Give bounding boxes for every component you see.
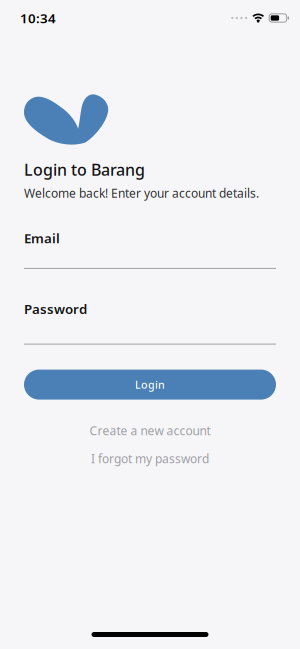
staticText: I forgot my password (91, 450, 209, 466)
button[interactable]: Create a new account (24, 423, 276, 438)
staticText: Create a new account (89, 423, 210, 438)
staticText: Login to Barang (24, 159, 145, 180)
button[interactable]: Login (24, 370, 276, 400)
button[interactable]: I forgot my password (24, 450, 276, 466)
staticText: Password (24, 300, 87, 318)
staticText: 10:34 (20, 9, 56, 27)
staticText: Email (24, 229, 60, 247)
staticText: Login (135, 377, 165, 392)
staticText: Welcome back! Enter your account details… (24, 185, 259, 201)
